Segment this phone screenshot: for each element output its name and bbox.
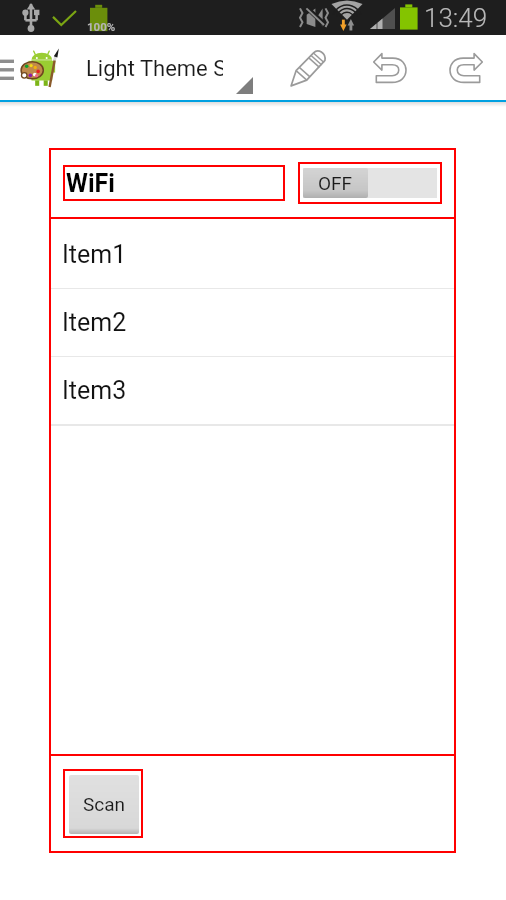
- staticText: 100%: [87, 20, 116, 33]
- button[interactable]: Edit: [281, 43, 337, 93]
- staticText: Scan: [83, 793, 126, 815]
- staticText: Light Theme Sa: [86, 56, 223, 82]
- button[interactable]: Redo: [438, 43, 494, 93]
- staticText: 13:49: [424, 3, 488, 33]
- button[interactable]: Scan: [63, 769, 143, 838]
- staticText: Item1: [62, 240, 127, 269]
- staticText: WiFi: [66, 169, 115, 198]
- button[interactable]: Item2: [51, 289, 454, 357]
- staticText: Item3: [62, 376, 127, 405]
- button[interactable]: Item1: [51, 221, 454, 289]
- button[interactable]: WiFi: [63, 165, 285, 201]
- staticText: OFF: [318, 172, 353, 194]
- button[interactable]: Undo: [361, 43, 417, 93]
- button[interactable]: OFF: [298, 162, 442, 204]
- button[interactable]: Item3: [51, 357, 454, 425]
- staticText: Item2: [62, 308, 127, 337]
- button[interactable]: Menu: [0, 35, 20, 100]
